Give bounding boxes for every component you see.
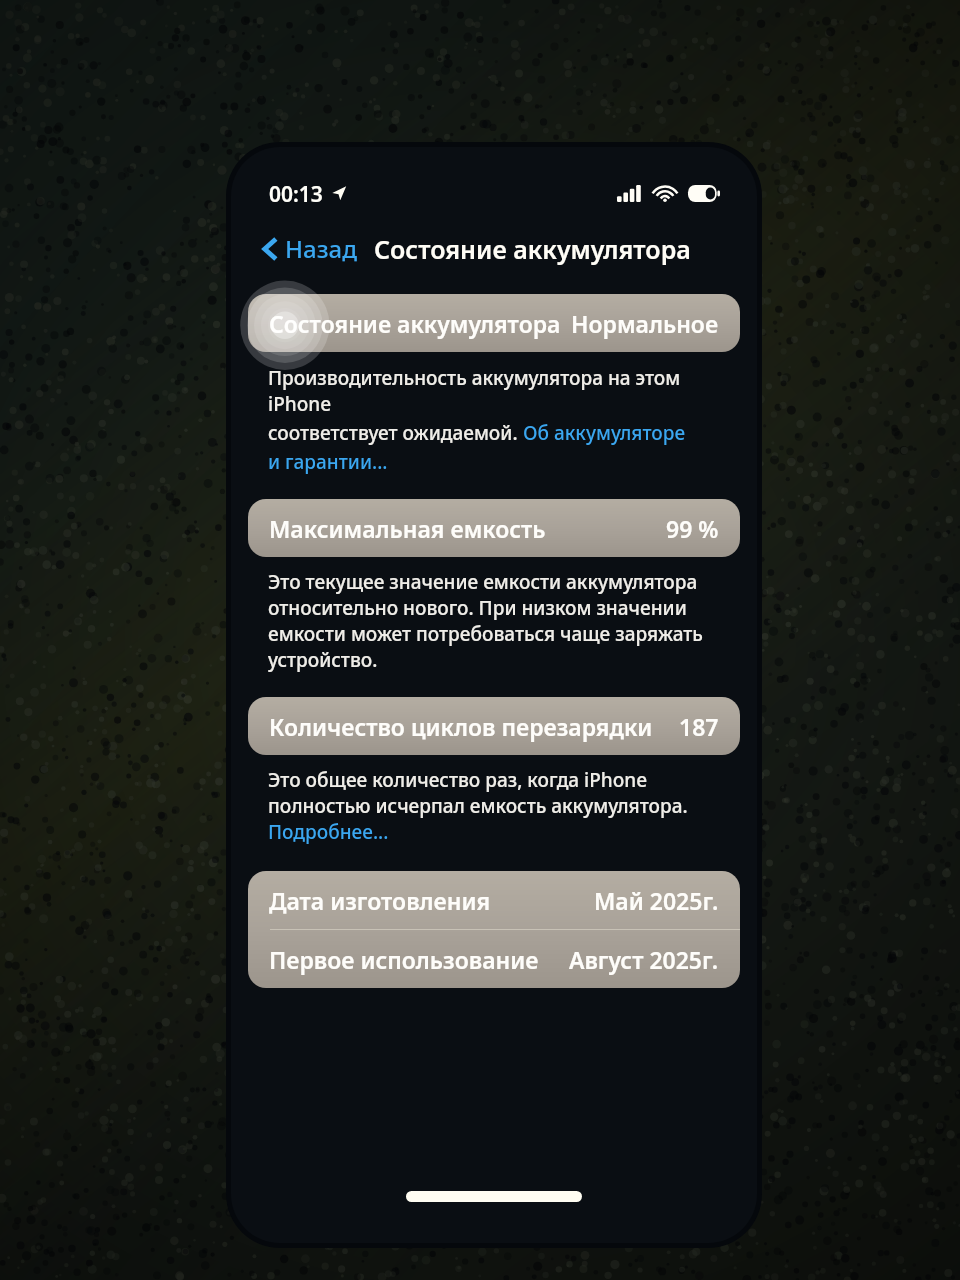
staticText: Подробнее... bbox=[268, 819, 389, 845]
button[interactable]: Об аккумуляторе bbox=[523, 420, 686, 446]
staticText: соответствует ожидаемой. bbox=[268, 420, 523, 446]
staticText: Состояние аккумулятора bbox=[269, 308, 561, 339]
staticText: Производительность аккумулятора на этом … bbox=[268, 365, 732, 417]
button[interactable]: Назад bbox=[259, 228, 361, 269]
staticText: и гарантии... bbox=[268, 449, 388, 475]
button[interactable]: Первое использование bbox=[248, 930, 740, 988]
other: Cellular signal bbox=[617, 185, 642, 202]
staticText: Состояние аккумулятора bbox=[374, 232, 691, 266]
button[interactable]: Количество циклов перезарядки bbox=[248, 697, 740, 755]
button[interactable]: Состояние аккумулятора bbox=[248, 294, 740, 352]
button[interactable]: Дата изготовления bbox=[248, 871, 740, 929]
other: Location bbox=[331, 185, 347, 201]
staticText: Дата изготовления bbox=[269, 885, 491, 916]
staticText: 99 % bbox=[666, 513, 719, 544]
staticText: Нормальное bbox=[571, 308, 719, 339]
button[interactable]: Подробнее... bbox=[268, 819, 389, 845]
staticText: Это общее количество раз, когда iPhone п… bbox=[268, 767, 688, 819]
staticText: Август 2025г. bbox=[569, 944, 719, 975]
button[interactable]: Максимальная емкость bbox=[248, 499, 740, 557]
staticText: Максимальная емкость bbox=[269, 513, 546, 544]
other: Battery bbox=[688, 185, 721, 202]
staticText: Количество циклов перезарядки bbox=[269, 711, 653, 742]
staticText: Об аккумуляторе bbox=[523, 420, 686, 446]
other: Wi-Fi bbox=[653, 185, 677, 202]
button[interactable]: и гарантии... bbox=[268, 449, 388, 475]
staticText: Первое использование bbox=[269, 944, 539, 975]
staticText: Это текущее значение емкости аккумулятор… bbox=[268, 569, 703, 673]
staticText: 187 bbox=[679, 711, 719, 742]
staticText: Май 2025г. bbox=[594, 885, 719, 916]
staticText: 00:13 bbox=[269, 180, 323, 206]
staticText: Назад bbox=[285, 232, 357, 265]
